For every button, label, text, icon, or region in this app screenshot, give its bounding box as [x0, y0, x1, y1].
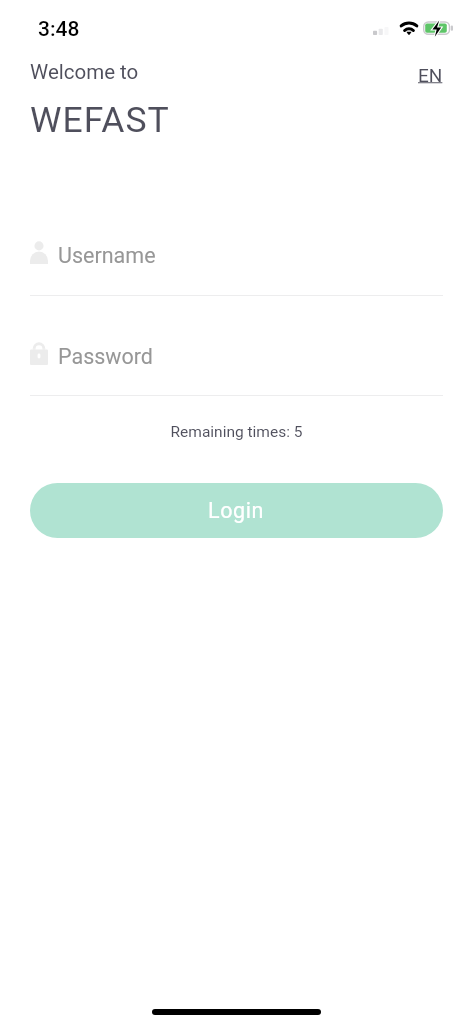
button[interactable]: Username	[30, 233, 443, 296]
staticText: Welcome to	[30, 60, 139, 84]
staticText: Username	[58, 243, 156, 266]
staticText: Remaining times: 5	[0, 423, 473, 441]
staticText: Password	[58, 344, 153, 366]
other: Battery charging	[423, 20, 453, 35]
other: Cellular signal strength	[373, 27, 389, 35]
staticText: WEFAST	[30, 99, 170, 141]
button[interactable]: Login	[30, 483, 443, 538]
other: Wi-Fi connected	[400, 21, 418, 35]
button[interactable]: Password	[30, 334, 443, 396]
staticText: 3:48	[38, 17, 80, 42]
staticText: EN	[418, 64, 443, 86]
staticText: Login	[208, 498, 265, 523]
button[interactable]: EN	[410, 56, 451, 94]
other: Password	[30, 343, 48, 365]
other: Username	[30, 241, 48, 264]
